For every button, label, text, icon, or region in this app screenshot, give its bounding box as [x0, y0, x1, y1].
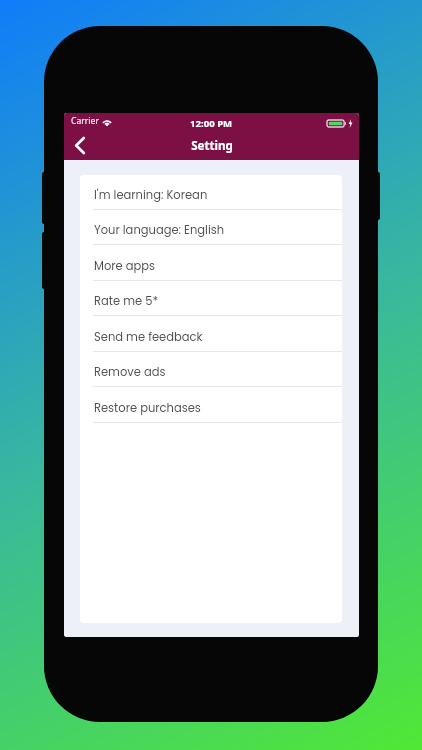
staticText: Your language: English [94, 222, 225, 238]
button[interactable]: Send me feedback [80, 317, 342, 352]
staticText: More apps [94, 258, 156, 274]
button[interactable]: Your language: English [80, 210, 342, 245]
staticText: Carrier [71, 115, 99, 127]
staticText: Send me feedback [94, 329, 203, 345]
button[interactable]: I'm learning: Korean [80, 175, 342, 210]
staticText: I'm learning: Korean [94, 187, 208, 203]
staticText: Restore purchases [94, 400, 201, 416]
staticText: Rate me 5* [94, 293, 159, 309]
staticText: 12:00 PM [190, 117, 233, 130]
staticText: Setting [191, 138, 233, 154]
button[interactable]: Remove ads [80, 352, 342, 387]
staticText: Remove ads [94, 364, 166, 380]
button[interactable]: More apps [80, 246, 342, 281]
button[interactable]: Back [64, 131, 96, 160]
button[interactable]: Restore purchases [80, 388, 342, 423]
button[interactable]: Rate me 5* [80, 281, 342, 316]
